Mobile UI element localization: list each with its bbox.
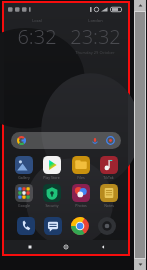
button[interactable]: Home [55, 240, 77, 254]
button[interactable]: TikTok [95, 156, 122, 180]
staticText: TikTok [103, 175, 114, 180]
button[interactable]: Photos [67, 184, 94, 208]
button[interactable]: Local [8, 18, 124, 55]
button[interactable]: Camera [96, 215, 117, 236]
button[interactable]: Google [10, 184, 37, 208]
button[interactable]: Notes [95, 184, 122, 208]
button[interactable]: Gallery [10, 156, 37, 180]
button[interactable]: Scroll up [134, 0, 146, 11]
button[interactable]: Search [11, 132, 121, 149]
button[interactable]: Play Store [38, 156, 65, 180]
staticText: Thursday 29 October [75, 50, 115, 55]
staticText: Local [32, 18, 42, 23]
staticText: Security [45, 203, 59, 208]
button[interactable]: Recents [19, 240, 41, 254]
button[interactable]: Security [38, 184, 65, 208]
staticText: 6:32 [17, 23, 57, 50]
button[interactable]: Back [92, 240, 114, 254]
staticText: Play Store [43, 175, 60, 180]
button[interactable]: Scroll down [134, 259, 146, 270]
staticText: London [88, 18, 103, 23]
staticText: Google [18, 203, 30, 208]
button[interactable]: Chrome [69, 215, 90, 236]
staticText: Photos [75, 203, 87, 208]
button[interactable]: Files [67, 156, 94, 180]
staticText: 23:32 [70, 23, 121, 50]
button[interactable]: Phone [15, 215, 36, 236]
staticText: Notes [104, 203, 114, 208]
staticText: Files [77, 175, 85, 180]
staticText: Gallery [18, 175, 30, 180]
button[interactable]: Messages [42, 215, 63, 236]
